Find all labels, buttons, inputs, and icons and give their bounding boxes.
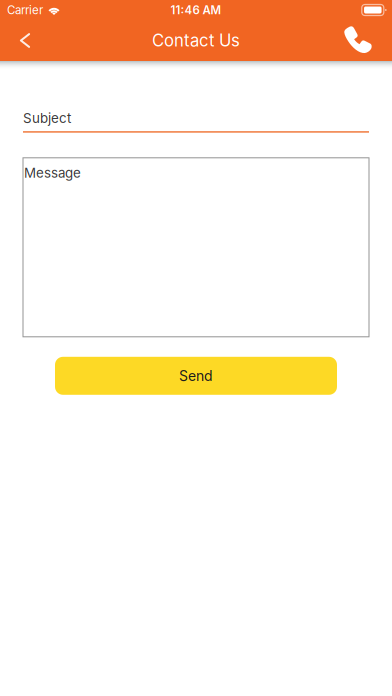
button[interactable]: Back [3,20,47,61]
staticText: Send [179,367,213,384]
button[interactable]: Call [334,20,378,61]
staticText: Subject [23,110,71,126]
staticText: Message [24,165,81,181]
staticText: 11:46 AM [170,3,221,17]
button[interactable]: Send [55,357,337,395]
staticText: Carrier [7,3,43,17]
staticText: Contact Us [152,30,240,51]
